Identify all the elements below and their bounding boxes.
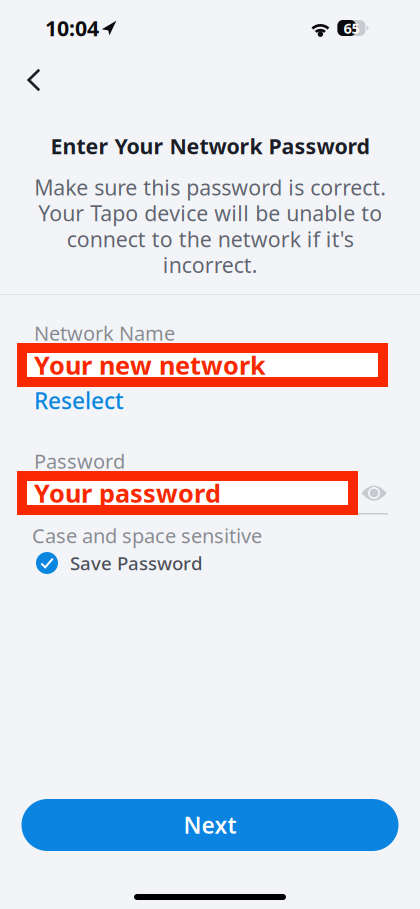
button[interactable]: Back <box>12 57 56 103</box>
button[interactable]: Show password <box>359 475 389 511</box>
staticText: Network Name <box>34 320 175 346</box>
staticText: Reselect <box>34 385 124 415</box>
staticText: Case and space sensitive <box>32 522 262 549</box>
staticText: Your new network <box>34 348 266 382</box>
button[interactable]: Save Password <box>0 548 420 578</box>
staticText: 10:04 <box>45 14 99 42</box>
staticText: Save Password <box>70 551 203 575</box>
staticText: Enter Your Network Password <box>50 132 369 160</box>
staticText: Next <box>183 810 236 840</box>
staticText: 65 <box>343 18 359 38</box>
button[interactable]: Next <box>21 799 398 851</box>
staticText: Password <box>34 448 125 474</box>
staticText: Your password <box>34 476 221 510</box>
staticText: Make sure this password is correct. Your… <box>34 173 386 279</box>
button[interactable]: Reselect <box>34 387 124 414</box>
